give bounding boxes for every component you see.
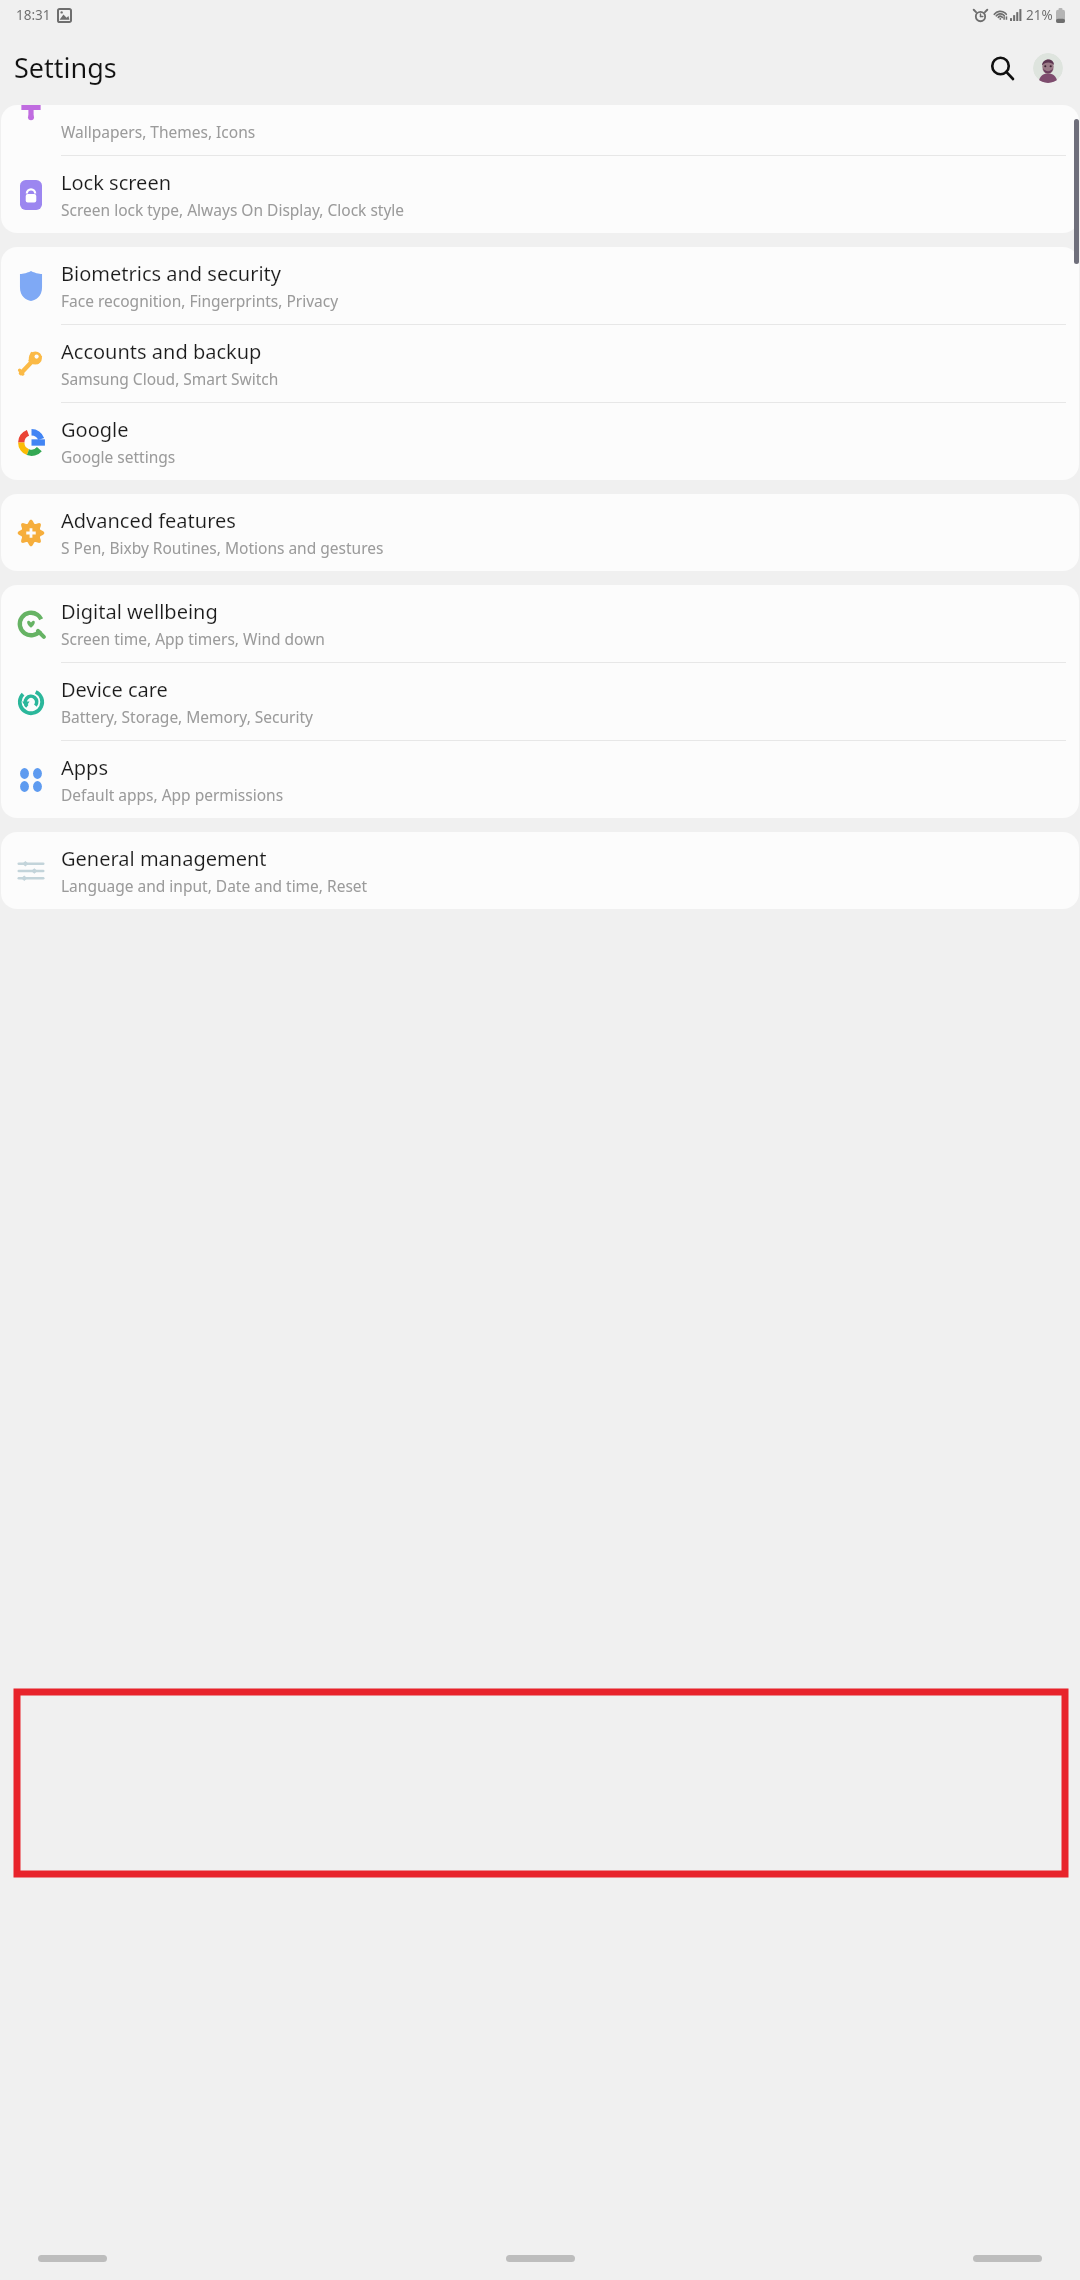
staticText: Biometrics and security — [61, 260, 281, 287]
button[interactable]: Advanced features — [1, 494, 1079, 571]
button[interactable]: Wallpapers, Themes, Icons — [1, 108, 1079, 155]
staticText: 18:31 — [16, 6, 51, 24]
button[interactable]: Apps — [1, 741, 1079, 818]
staticText: S Pen, Bixby Routines, Motions and gestu… — [61, 537, 384, 558]
staticText: Device care — [61, 676, 168, 703]
staticText: Wallpapers, Themes, Icons — [61, 121, 256, 142]
staticText: Language and input, Date and time, Reset — [61, 875, 368, 896]
staticText: Lock screen — [61, 169, 172, 196]
button[interactable]: Search — [980, 46, 1024, 90]
staticText: Face recognition, Fingerprints, Privacy — [61, 290, 339, 311]
staticText: Battery, Storage, Memory, Security — [61, 706, 314, 727]
staticText: Screen lock type, Always On Display, Clo… — [61, 199, 405, 220]
staticText: Digital wellbeing — [61, 598, 218, 625]
staticText: Google — [61, 416, 129, 443]
button[interactable]: Digital wellbeing — [1, 585, 1079, 662]
staticText: Apps — [61, 754, 108, 781]
button[interactable]: Biometrics and security — [1, 247, 1079, 324]
staticText: Screen time, App timers, Wind down — [61, 628, 325, 649]
button[interactable]: Lock screen — [1, 156, 1079, 233]
button[interactable]: Accounts and backup — [1, 325, 1079, 402]
staticText: Advanced features — [61, 507, 236, 534]
button[interactable]: Profile — [1033, 53, 1063, 83]
staticText: Default apps, App permissions — [61, 784, 284, 805]
staticText: 21% — [1026, 6, 1053, 24]
staticText: Settings — [14, 49, 117, 86]
button[interactable]: General management — [1, 832, 1079, 909]
staticText: Accounts and backup — [61, 338, 262, 365]
button[interactable]: Device care — [1, 663, 1079, 740]
staticText: General management — [61, 845, 267, 872]
button[interactable]: Google — [1, 403, 1079, 480]
staticText: Samsung Cloud, Smart Switch — [61, 368, 279, 389]
staticText: Google settings — [61, 446, 176, 467]
